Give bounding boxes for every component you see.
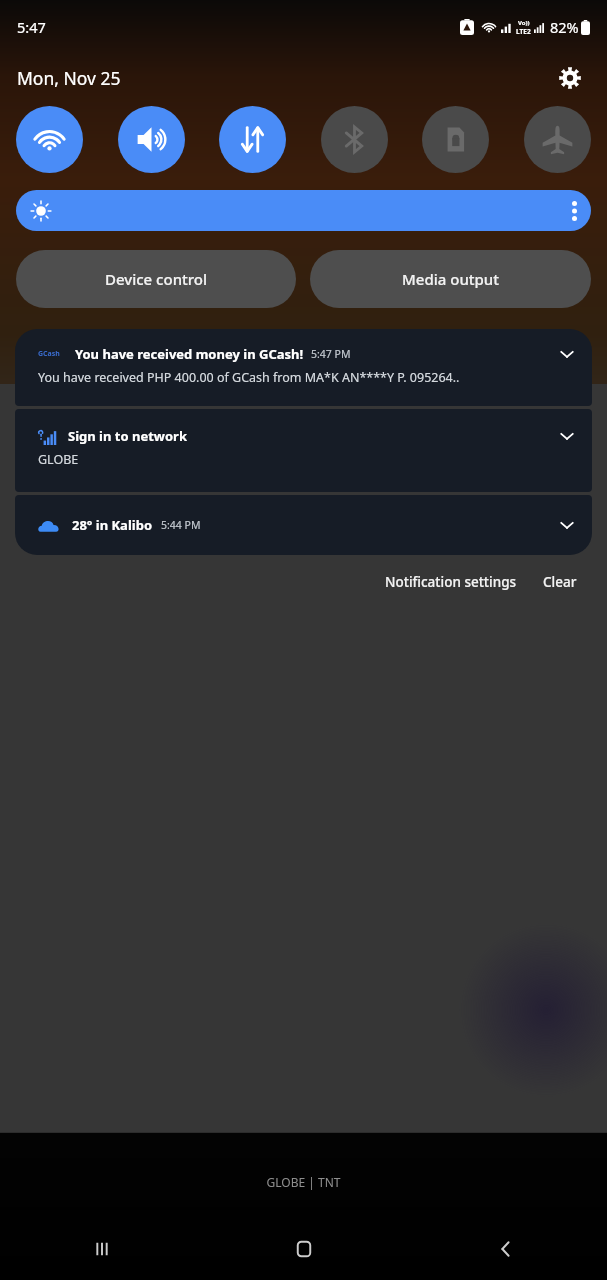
- button[interactable]: Wi-Fi: [16, 106, 83, 173]
- button[interactable]: Expand notification: [550, 508, 584, 542]
- button[interactable]: Device control: [16, 250, 296, 308]
- button[interactable]: 28° in Kalibo: [15, 495, 592, 555]
- staticText: Notification settings: [385, 573, 517, 591]
- button[interactable]: Bluetooth: [321, 106, 388, 173]
- button[interactable]: Back: [405, 1218, 607, 1280]
- staticText: GLOBE: [38, 451, 79, 468]
- button[interactable]: Home: [203, 1218, 405, 1280]
- staticText: You have received PHP 400.00 of GCash fr…: [38, 369, 460, 386]
- button[interactable]: Settings: [553, 61, 587, 95]
- staticText: LTE2: [516, 27, 531, 36]
- button[interactable]: Recent apps: [0, 1218, 203, 1280]
- button[interactable]: Expand notification: [550, 419, 584, 453]
- staticText: GCash: [38, 349, 60, 359]
- button[interactable]: Notification settings: [379, 567, 523, 597]
- staticText: Vo)): [518, 19, 530, 27]
- staticText: Clear: [543, 573, 577, 591]
- staticText: You have received money in GCash!: [75, 345, 304, 363]
- button[interactable]: Brightness: [16, 190, 591, 231]
- button[interactable]: GCash: [15, 329, 592, 406]
- button[interactable]: Media output: [310, 250, 591, 308]
- staticText: GLOBE | TNT: [0, 1174, 607, 1190]
- button[interactable]: Mobile data: [219, 106, 286, 173]
- button[interactable]: Airplane mode: [524, 106, 591, 173]
- staticText: Media output: [402, 269, 499, 289]
- staticText: 28° in Kalibo: [72, 516, 153, 534]
- staticText: 5:47: [17, 17, 46, 37]
- staticText: 5:47 PM: [311, 347, 351, 361]
- staticText: 82%: [550, 17, 579, 37]
- staticText: Device control: [105, 269, 208, 289]
- button[interactable]: Sound: [118, 106, 185, 173]
- staticText: Sign in to network: [68, 427, 187, 445]
- button[interactable]: Sign in to network: [15, 409, 592, 492]
- button[interactable]: Expand notification: [550, 337, 584, 371]
- button[interactable]: SIM lock: [422, 106, 489, 173]
- staticText: Mon, Nov 25: [17, 66, 121, 90]
- button[interactable]: Clear: [537, 567, 583, 597]
- staticText: 5:44 PM: [161, 518, 201, 532]
